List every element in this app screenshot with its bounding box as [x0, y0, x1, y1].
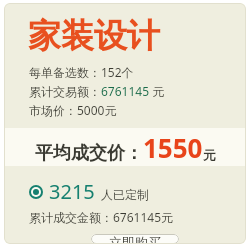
staticText: 1550	[143, 130, 203, 165]
staticText: 每单备选数：152个	[29, 64, 134, 80]
staticText: 家装设计	[28, 15, 160, 57]
staticText: 累计成交金额：6761145元	[29, 209, 174, 225]
staticText: 人已定制	[101, 187, 149, 202]
staticText: 元	[203, 147, 216, 163]
button[interactable]: 立即购买	[91, 234, 179, 244]
staticText: 3215	[49, 178, 95, 205]
staticText: 市场价：5000元	[29, 102, 117, 118]
staticText: 平均成交价：	[35, 142, 143, 165]
staticText: 立即购买	[109, 234, 161, 244]
staticText: 累计交易额：6761145 元	[29, 83, 165, 99]
